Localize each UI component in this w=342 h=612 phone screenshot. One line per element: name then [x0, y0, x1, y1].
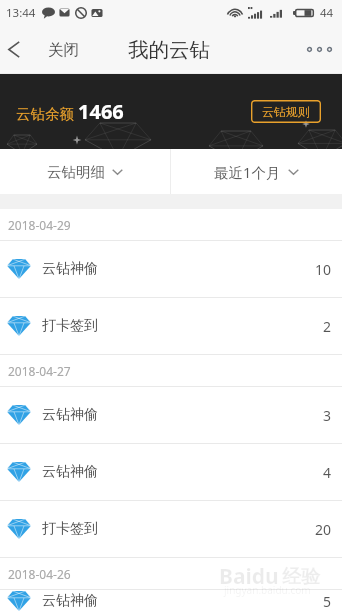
staticText: 1466: [78, 98, 124, 125]
staticText: 关闭: [48, 40, 79, 60]
staticText: 2018-04-26: [8, 566, 71, 582]
staticText: jingyan.baidu.com: [224, 583, 311, 597]
staticText: 44: [320, 5, 334, 21]
staticText: 打卡签到: [42, 520, 98, 538]
staticText: 13:44: [6, 5, 36, 21]
button[interactable]: 云钻规则: [251, 100, 321, 123]
button[interactable]: 打卡签到: [0, 501, 342, 557]
staticText: 云钻余额: [16, 105, 74, 123]
staticText: 打卡签到: [42, 317, 98, 335]
staticText: 2018-04-29: [8, 217, 71, 233]
staticText: 云钻神偷: [42, 463, 98, 481]
button[interactable]: 云钻神偷: [0, 444, 342, 500]
button[interactable]: 打卡签到: [0, 298, 342, 354]
staticText: 2: [323, 317, 332, 336]
staticText: 4: [323, 463, 332, 482]
staticText: 云钻明细: [47, 163, 105, 181]
button[interactable]: More options: [296, 25, 342, 74]
staticText: 我的云钻: [128, 37, 210, 63]
button[interactable]: 云钻神偷: [0, 590, 342, 612]
staticText: 2018-04-27: [8, 363, 71, 379]
staticText: 云钻神偷: [42, 260, 98, 278]
staticText: 10: [315, 260, 332, 279]
staticText: 5: [323, 592, 332, 611]
button[interactable]: 云钻明细: [0, 149, 170, 194]
staticText: 20: [315, 520, 332, 539]
staticText: Baidu: [219, 562, 279, 591]
staticText: 经验: [282, 565, 320, 589]
staticText: 最近1个月: [214, 162, 281, 182]
staticText: 云钻规则: [262, 104, 310, 119]
staticText: 云钻神偷: [42, 592, 98, 610]
button[interactable]: 最近1个月: [171, 149, 342, 194]
button[interactable]: 关闭: [0, 25, 86, 74]
staticText: 云钻神偷: [42, 406, 98, 424]
button[interactable]: 云钻神偷: [0, 387, 342, 443]
button[interactable]: 云钻神偷: [0, 241, 342, 297]
staticText: 3: [323, 406, 332, 425]
